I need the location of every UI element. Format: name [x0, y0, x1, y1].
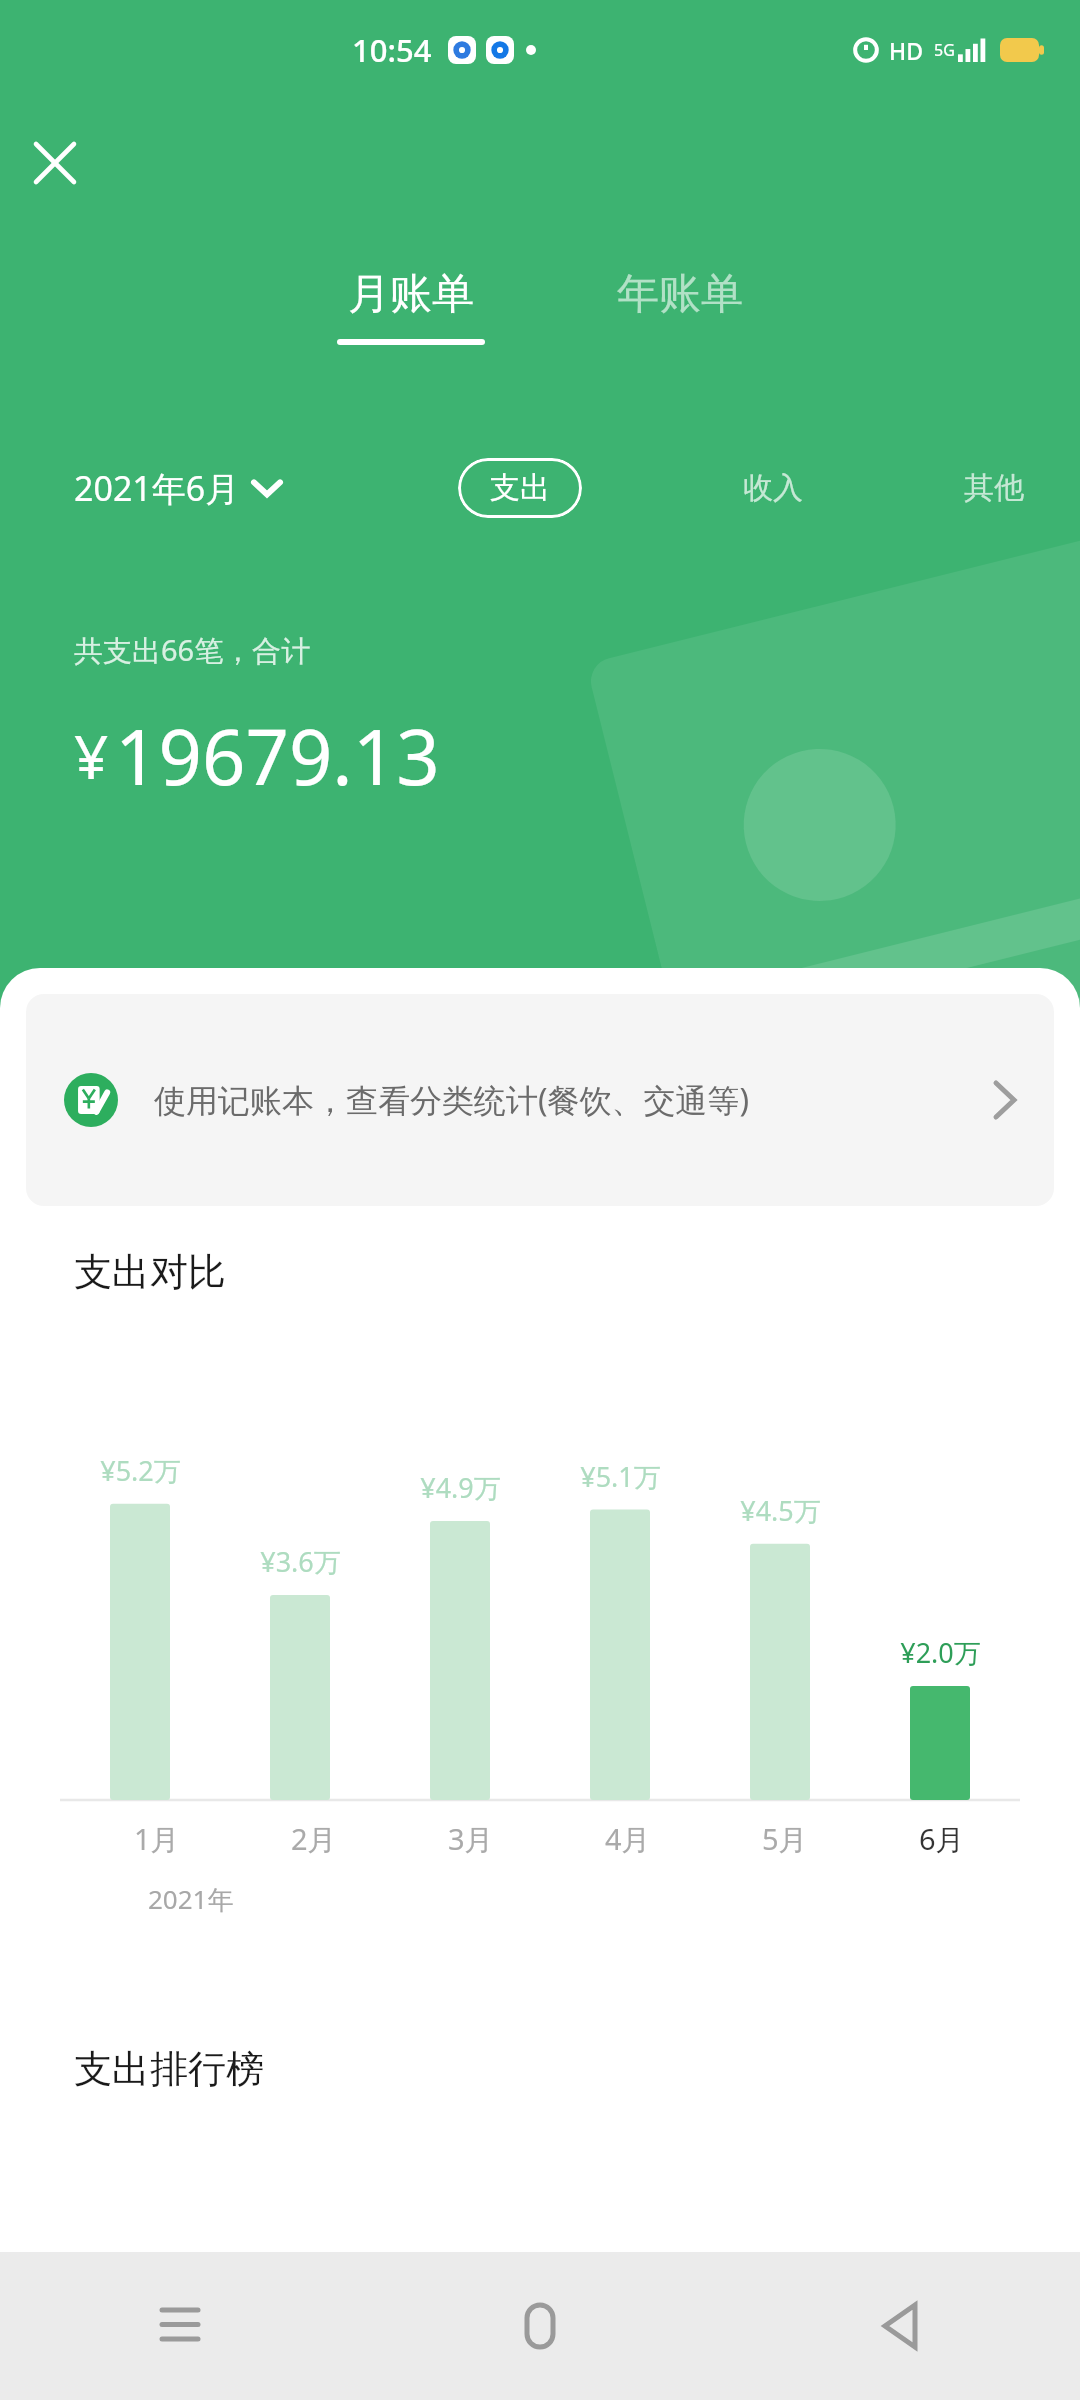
staticText: 5月 — [762, 1819, 808, 1859]
staticText: 4月 — [605, 1819, 651, 1859]
staticText: 6月 — [919, 1819, 965, 1859]
button[interactable]: 月账单 — [321, 262, 501, 351]
button[interactable]: 年账单 — [601, 262, 759, 351]
staticText: 支出对比 — [74, 1248, 226, 1296]
button[interactable]: 其他 — [964, 469, 1024, 507]
staticText: 共支出66笔，合计 — [74, 630, 311, 670]
staticText: 2月 — [291, 1819, 337, 1859]
staticText: 支出排行榜 — [74, 2045, 264, 2093]
staticText: ¥4.9万 — [420, 1469, 501, 1506]
staticText: 2021年6月 — [74, 465, 240, 511]
button[interactable]: Back — [720, 2252, 1080, 2400]
button[interactable]: Close — [14, 122, 96, 204]
staticText: 其他 — [964, 469, 1024, 507]
staticText: 支出 — [490, 469, 550, 507]
staticText: 年账单 — [617, 268, 743, 321]
staticText: ¥5.1万 — [580, 1458, 661, 1495]
staticText: 收入 — [743, 469, 803, 507]
staticText: ¥ — [74, 715, 109, 797]
button[interactable]: 支出 — [458, 458, 582, 518]
staticText: 2021年 — [148, 1881, 234, 1917]
staticText: ¥2.0万 — [900, 1634, 981, 1671]
button[interactable]: Home — [360, 2252, 720, 2400]
staticText: 使用记账本，查看分类统计(餐饮、交通等) — [154, 1078, 976, 1122]
staticText: 1月 — [134, 1819, 180, 1859]
staticText: HD — [889, 35, 924, 66]
staticText: ¥5.2万 — [100, 1452, 181, 1489]
button[interactable]: 使用记账本，查看分类统计(餐饮、交通等) — [26, 994, 1054, 1206]
button[interactable]: Recents — [0, 2252, 360, 2400]
staticText: ¥3.6万 — [260, 1543, 341, 1580]
button[interactable]: 2021年6月 — [74, 465, 280, 511]
staticText: 19679.13 — [115, 704, 440, 808]
staticText: ¥4.5万 — [740, 1492, 821, 1529]
button[interactable]: 收入 — [743, 469, 803, 507]
staticText: 10:54 — [352, 29, 432, 71]
staticText: 3月 — [448, 1819, 494, 1859]
staticText: 月账单 — [348, 268, 474, 321]
staticText: 5G — [934, 39, 955, 61]
